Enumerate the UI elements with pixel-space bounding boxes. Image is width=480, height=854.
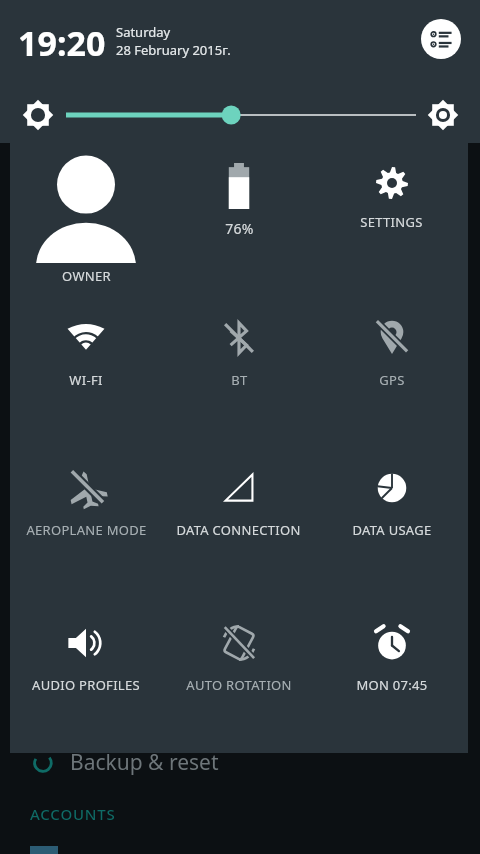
staticText: AUDIO PROFILES — [32, 676, 140, 694]
button[interactable]: AUTO ROTATION — [162, 608, 315, 718]
button[interactable]: DATA USAGE — [315, 453, 468, 563]
button[interactable]: DATA CONNECTION — [162, 453, 315, 563]
button[interactable]: WI-FI — [10, 303, 162, 413]
staticText: Saturday — [116, 23, 171, 41]
button[interactable]: Low brightness — [20, 97, 56, 133]
button[interactable]: AEROPLANE MODE — [10, 453, 162, 563]
staticText: DATA USAGE — [352, 521, 432, 539]
staticText: BT — [231, 371, 248, 389]
staticText: 19:20 — [18, 20, 106, 66]
button[interactable]: BT — [162, 303, 315, 413]
staticText: DATA CONNECTION — [176, 521, 301, 539]
button[interactable]: Quick settings list — [421, 19, 461, 59]
staticText: OWNER — [62, 267, 111, 285]
staticText: GPS — [379, 371, 405, 389]
staticText: Backup & reset — [70, 748, 219, 777]
staticText: AEROPLANE MODE — [26, 521, 147, 539]
button[interactable]: High brightness — [425, 97, 461, 133]
button[interactable]: 76% — [162, 143, 315, 303]
staticText: 28 February 2015г. — [116, 41, 231, 59]
button[interactable]: MON 07:45 — [315, 608, 468, 718]
staticText: WI-FI — [69, 371, 103, 389]
staticText: MON 07:45 — [356, 676, 428, 694]
staticText: AUTO ROTATION — [186, 676, 292, 694]
staticText: SETTINGS — [360, 213, 423, 231]
button[interactable]: AUDIO PROFILES — [10, 608, 162, 718]
button[interactable]: GPS — [315, 303, 468, 413]
button[interactable]: OWNER — [10, 143, 162, 303]
button[interactable]: SETTINGS — [315, 143, 468, 303]
staticText: 76% — [225, 219, 254, 238]
staticText: ACCOUNTS — [30, 804, 116, 824]
button[interactable]: Brightness slider — [66, 100, 416, 130]
